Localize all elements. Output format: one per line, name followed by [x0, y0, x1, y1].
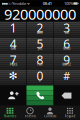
button[interactable]: Delete: [53, 85, 80, 105]
staticText: 1: [10, 20, 17, 36]
button[interactable]: 7: [0, 54, 26, 69]
button[interactable]: 1: [0, 22, 26, 37]
staticText: 5: [36, 36, 43, 52]
staticText: PQRS: [10, 63, 17, 66]
button[interactable]: 2: [27, 22, 53, 37]
button[interactable]: Favorites: [0, 105, 20, 119]
staticText: 100%: [64, 1, 73, 6]
staticText: Favorites: [4, 114, 16, 118]
staticText: ●●●○○: [1, 2, 11, 5]
staticText: 2: [36, 20, 43, 36]
staticText: 4: [10, 36, 17, 52]
button[interactable]: 0: [27, 70, 53, 85]
button[interactable]: Keypad: [60, 105, 80, 119]
button[interactable]: 8: [27, 54, 53, 69]
staticText: 08:41: [43, 1, 52, 6]
staticText: 8: [36, 52, 43, 68]
staticText: TUV: [37, 63, 43, 66]
button[interactable]: 3: [54, 22, 80, 37]
button[interactable]: ✻: [0, 70, 26, 85]
staticText: WXYZ: [62, 63, 71, 66]
staticText: 6: [63, 36, 70, 52]
button[interactable]: 6: [54, 38, 80, 53]
staticText: Recents: [24, 114, 35, 118]
button[interactable]: Recents: [20, 105, 40, 119]
button[interactable]: #: [54, 70, 80, 85]
button[interactable]: 9: [54, 54, 80, 69]
button[interactable]: 4: [0, 38, 26, 53]
staticText: GHI: [11, 47, 16, 50]
button[interactable]: Call: [26, 85, 53, 105]
staticText: Keypad: [64, 114, 75, 118]
staticText: 7: [10, 52, 17, 68]
staticText: 920000000: [4, 4, 76, 24]
staticText: ABC: [37, 31, 43, 34]
button[interactable]: 5: [27, 38, 53, 53]
staticText: 0: [36, 68, 43, 84]
staticText: Ymobile: [12, 1, 26, 6]
button[interactable]: Contacts: [40, 105, 60, 119]
staticText: ✻: [9, 70, 18, 82]
staticText: JKL: [38, 47, 42, 50]
staticText: #: [63, 69, 70, 83]
staticText: ᯤ: [26, 1, 30, 6]
staticText: Contacts: [44, 114, 56, 118]
staticText: 9: [63, 52, 70, 68]
staticText: +: [39, 79, 41, 82]
button[interactable]: Add Number: [0, 85, 26, 105]
staticText: 3: [63, 20, 70, 36]
staticText: DEF: [65, 31, 69, 34]
staticText: MNO: [63, 47, 70, 50]
